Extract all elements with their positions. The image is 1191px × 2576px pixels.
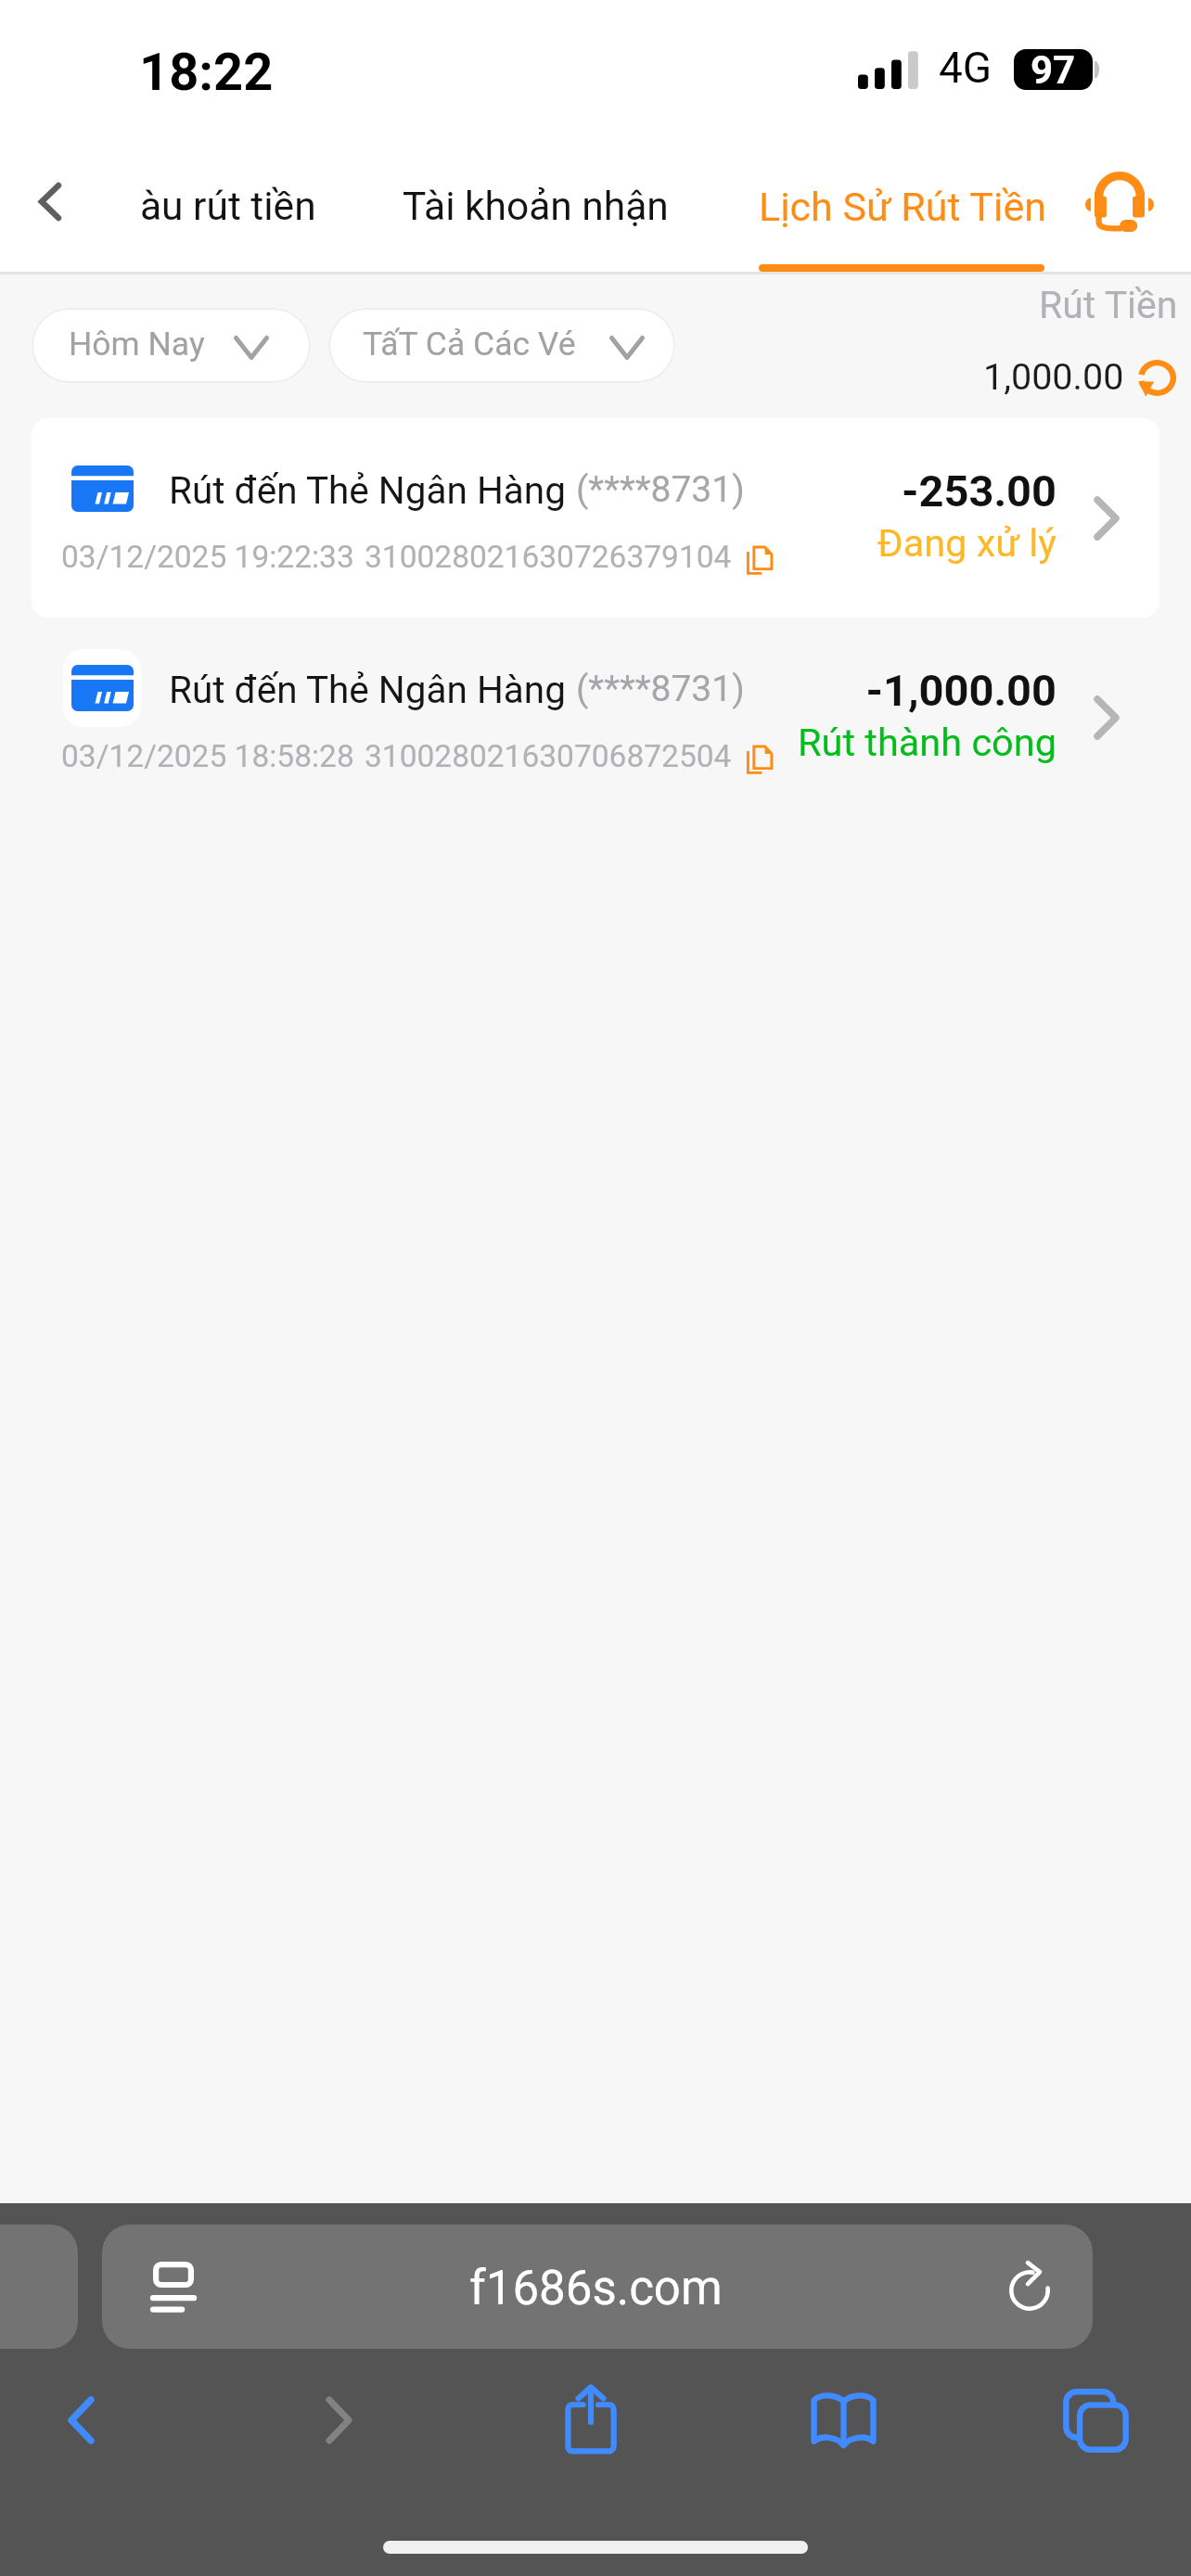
staticText: Rút thành công	[778, 720, 1057, 765]
staticText: TấT Cả Các Vé	[363, 325, 576, 363]
staticText: 310028021630706872504	[365, 738, 732, 774]
button[interactable]: Tài khoản nhận	[390, 148, 677, 264]
staticText: 18:22	[139, 42, 274, 103]
button[interactable]: Previous tab	[0, 2225, 78, 2349]
button[interactable]: Reload page	[989, 2241, 1070, 2332]
button[interactable]: Refresh balance	[1131, 351, 1183, 403]
staticText: 4G	[939, 43, 992, 93]
staticText: 03/12/2025 18:58:28	[61, 738, 354, 774]
button[interactable]: Copy transaction id	[736, 735, 784, 784]
staticText: Rút đến Thẻ Ngân Hàng	[169, 468, 566, 512]
staticText: -1,000.00	[778, 665, 1057, 716]
button[interactable]: Tabs	[1035, 2383, 1157, 2457]
button[interactable]: Copy transaction id	[736, 536, 784, 584]
button[interactable]: àu rút tiền	[111, 148, 380, 264]
staticText: Lịch Sử Rút Tiền	[759, 184, 1047, 230]
staticText: 03/12/2025 19:22:33	[61, 539, 354, 575]
staticText: Rút đến Thẻ Ngân Hàng	[169, 668, 566, 711]
staticText: Hôm Nay	[69, 325, 205, 363]
staticText: f1686s.com	[469, 2261, 723, 2316]
staticText: Đang xử lý	[778, 520, 1057, 566]
staticText: Tài khoản nhận	[403, 184, 669, 230]
button[interactable]	[32, 418, 1159, 618]
button[interactable]: Lịch Sử Rút Tiền	[742, 148, 1062, 264]
staticText: (****8731)	[576, 468, 745, 511]
staticText: Rút Tiền	[1039, 283, 1178, 327]
staticText: 97	[1031, 49, 1076, 88]
staticText: -253.00	[778, 465, 1057, 516]
button[interactable]: Back	[0, 137, 100, 266]
button[interactable]: Page settings	[102, 2225, 1093, 2349]
button[interactable]	[32, 618, 1159, 817]
button[interactable]: Share	[530, 2381, 651, 2455]
button[interactable]: Bookmarks	[783, 2383, 904, 2457]
staticText: 310028021630726379104	[365, 539, 732, 575]
button[interactable]: Back	[20, 2383, 142, 2457]
button[interactable]: Page settings	[145, 2248, 201, 2326]
button[interactable]: Hôm Nay	[32, 308, 311, 383]
button[interactable]: Forward	[278, 2383, 400, 2457]
staticText: 1,000.00	[983, 355, 1124, 398]
button[interactable]: TấT Cả Các Vé	[328, 308, 675, 383]
staticText: (****8731)	[576, 668, 745, 710]
staticText: àu rút tiền	[140, 184, 316, 230]
button[interactable]: Customer support	[1062, 148, 1177, 264]
